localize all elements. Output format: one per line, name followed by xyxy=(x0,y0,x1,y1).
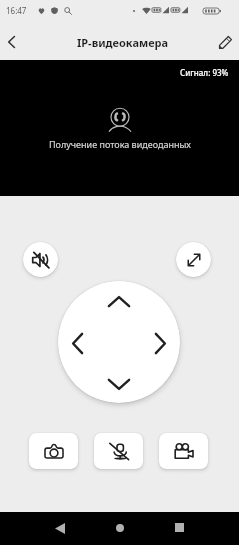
button[interactable]: Take snapshot xyxy=(29,433,78,469)
button[interactable]: Tilt up xyxy=(99,286,139,317)
staticText: IP-видеокамера xyxy=(77,35,169,50)
staticText: 16:47 xyxy=(6,5,27,16)
staticText: Получение потока видеоданных xyxy=(49,138,191,150)
button[interactable]: Back xyxy=(45,514,74,543)
button[interactable]: Record video xyxy=(159,433,208,469)
button[interactable]: Edit xyxy=(212,28,238,54)
button[interactable]: Tilt down xyxy=(99,369,139,400)
button[interactable]: Pan right xyxy=(145,328,176,359)
button[interactable]: Pan left xyxy=(62,328,93,359)
button[interactable]: Fullscreen xyxy=(176,242,211,277)
button[interactable]: Mute sound xyxy=(23,242,58,277)
button[interactable]: Recent apps xyxy=(165,513,194,542)
button[interactable]: Microphone off xyxy=(94,433,143,469)
button[interactable]: Back xyxy=(0,26,26,56)
staticText: Сигнал: 93% xyxy=(180,67,229,78)
button[interactable]: Home xyxy=(105,513,134,542)
